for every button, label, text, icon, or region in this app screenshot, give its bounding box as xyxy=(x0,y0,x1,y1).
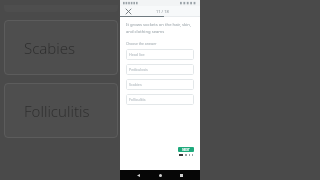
button[interactable]: Back xyxy=(135,172,142,179)
staticText: Scabies xyxy=(24,38,76,58)
staticText: 11 / 18 xyxy=(156,9,169,14)
staticText: It grows sockets on the hair, skin, and … xyxy=(126,22,194,34)
button[interactable]: NEXT xyxy=(178,147,194,152)
button[interactable]: Folliculitis xyxy=(4,83,118,138)
staticText: Choose the answer xyxy=(126,41,157,46)
button[interactable]: Head lice xyxy=(126,49,194,60)
staticText: Scabies xyxy=(129,82,142,87)
button[interactable]: Home xyxy=(157,172,164,179)
button[interactable]: Scabies xyxy=(4,20,118,75)
staticText: Folliculitis xyxy=(129,97,146,102)
staticText: NEXT xyxy=(182,148,190,152)
button[interactable]: Close xyxy=(124,7,132,15)
button[interactable]: Folliculitis xyxy=(126,94,194,105)
staticText: Head lice xyxy=(129,52,145,57)
button[interactable]: Recent apps xyxy=(178,172,185,179)
button[interactable]: Scabies xyxy=(126,79,194,90)
staticText: Folliculitis xyxy=(24,101,90,121)
staticText: Pediculosis xyxy=(129,67,148,72)
button[interactable]: Pediculosis xyxy=(126,64,194,75)
